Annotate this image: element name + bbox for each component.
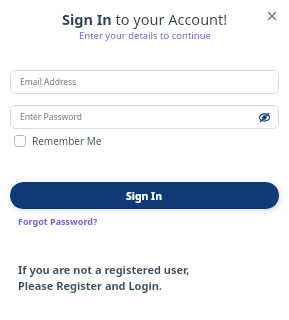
staticText: If you are not a registered user, <box>18 262 190 277</box>
button[interactable]: Email Address <box>10 70 279 94</box>
button[interactable] <box>266 10 278 22</box>
button[interactable]: Remember Me <box>14 134 102 148</box>
button[interactable]: Forgot Password? <box>18 215 98 227</box>
staticText: Enter Password <box>20 111 83 123</box>
button[interactable]: Enter Password <box>10 105 279 129</box>
button[interactable] <box>259 112 270 123</box>
button[interactable]: Sign In <box>10 182 279 209</box>
staticText: Sign In <box>126 189 163 203</box>
staticText: Please Register and Login. <box>18 278 162 293</box>
staticText: Remember Me <box>32 134 102 148</box>
staticText: Sign In to your Account! <box>62 9 228 29</box>
staticText: Email Address <box>20 76 77 88</box>
staticText: Enter your details to continue <box>79 29 211 42</box>
